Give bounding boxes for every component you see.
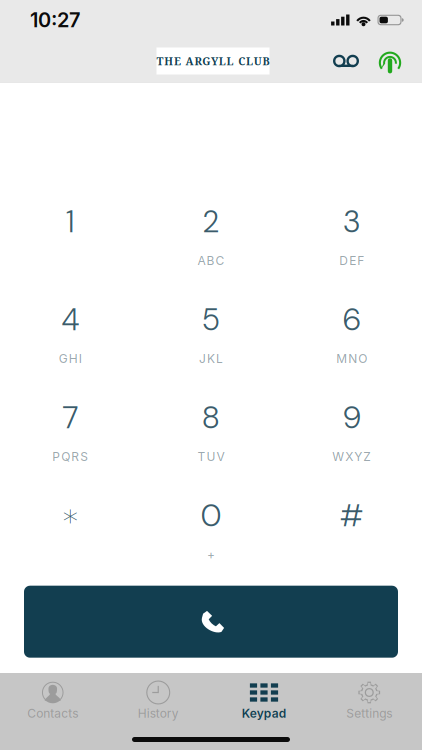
staticText: ∗: [61, 498, 80, 534]
button[interactable]: 8: [141, 401, 281, 462]
button[interactable]: 5: [141, 303, 281, 364]
button[interactable]: 7: [0, 401, 141, 462]
staticText: JKL: [199, 351, 223, 366]
staticText: Keypad: [242, 706, 286, 721]
button[interactable]: ∗: [0, 499, 141, 560]
staticText: History: [138, 706, 179, 721]
staticText: DEF: [339, 253, 364, 268]
staticText: 7: [62, 398, 78, 438]
staticText: 9: [342, 398, 361, 438]
button[interactable]: 6: [281, 303, 422, 364]
staticText: GHI: [59, 351, 82, 366]
button[interactable]: Settings: [316, 673, 422, 721]
button[interactable]: Contacts: [0, 673, 105, 721]
staticText: 10:27: [30, 8, 80, 32]
staticText: MNO: [336, 351, 367, 366]
button[interactable]: 1: [0, 205, 141, 266]
staticText: 8: [201, 398, 220, 438]
staticText: Contacts: [27, 706, 78, 721]
staticText: 1: [66, 202, 75, 242]
staticText: 5: [201, 300, 220, 340]
staticText: #: [339, 496, 364, 536]
button[interactable]: Live broadcast: [368, 40, 412, 82]
staticText: 3: [343, 202, 361, 242]
staticText: 6: [342, 300, 361, 340]
staticText: ABC: [197, 253, 224, 268]
staticText: WXYZ: [332, 449, 371, 464]
staticText: THE ARGYLL CLUB: [156, 54, 270, 68]
staticText: 4: [61, 300, 79, 340]
button[interactable]: 9: [281, 401, 422, 462]
button[interactable]: History: [105, 673, 211, 721]
staticText: 0: [200, 496, 221, 536]
staticText: Settings: [346, 706, 392, 721]
staticText: +: [207, 547, 215, 562]
staticText: TUV: [197, 449, 224, 464]
button[interactable]: 4: [0, 303, 141, 364]
button[interactable]: 2: [141, 205, 281, 266]
button[interactable]: Voicemail: [324, 40, 368, 82]
button[interactable]: Keypad: [211, 673, 316, 721]
button[interactable]: Call: [24, 586, 398, 658]
button[interactable]: #: [281, 499, 422, 560]
staticText: 2: [202, 202, 220, 242]
button[interactable]: 3: [281, 205, 422, 266]
staticText: PQRS: [52, 449, 88, 464]
button[interactable]: 0: [141, 499, 281, 560]
